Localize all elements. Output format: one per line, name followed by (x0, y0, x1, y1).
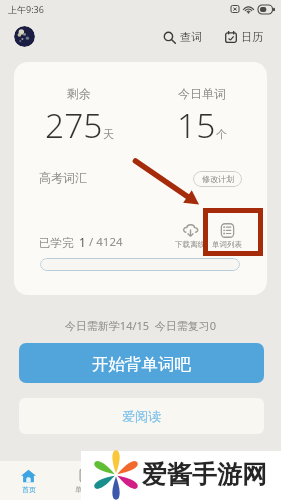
button[interactable]: 单词列表 (209, 223, 245, 249)
staticText: 阅读 (134, 485, 148, 494)
button[interactable]: 爱阅读 (19, 398, 264, 434)
button[interactable]: 单词本 (57, 468, 113, 494)
staticText: 1 (79, 234, 86, 250)
staticText: 275 (45, 102, 103, 148)
button[interactable]: 开始背单词吧 (19, 343, 264, 383)
staticText: 今日单词 (178, 86, 226, 101)
button[interactable]: 修改计划 (193, 171, 242, 187)
staticText: 发现 (190, 485, 204, 494)
staticText: 已学完 (39, 236, 74, 250)
staticText: / 4124 (86, 234, 123, 250)
button[interactable]: 首页 (0, 468, 57, 494)
staticText: 单词列表 (212, 240, 242, 249)
staticText: 修改计划 (202, 174, 234, 184)
button[interactable]: 我的 (225, 468, 281, 494)
staticText: 我的 (246, 485, 260, 494)
button[interactable]: 阅读 (113, 468, 169, 494)
button[interactable]: 查词 (160, 25, 205, 49)
staticText: 爱酱手游网 (142, 459, 267, 490)
staticText: 查词 (180, 30, 202, 44)
button[interactable]: Profile (14, 26, 35, 47)
staticText: 爱阅读 (122, 408, 161, 424)
staticText: 单词本 (75, 485, 96, 494)
staticText: 高考词汇 (39, 170, 87, 185)
staticText: 上午9:36 (8, 3, 44, 15)
button[interactable]: 下载离线 (172, 223, 208, 249)
button[interactable]: 发现 (169, 468, 225, 494)
staticText: 首页 (22, 485, 36, 494)
button[interactable]: 日历 (222, 25, 266, 49)
staticText: 开始背单词吧 (92, 354, 191, 375)
staticText: 日历 (241, 30, 263, 44)
staticText: 15 (177, 102, 216, 148)
staticText: 下载离线 (175, 240, 205, 249)
staticText: 剩余 (67, 86, 91, 101)
staticText: 今日需新学14/15 今日需复习0 (0, 318, 281, 333)
staticText: 天 (103, 127, 114, 141)
staticText: 个 (216, 127, 227, 141)
